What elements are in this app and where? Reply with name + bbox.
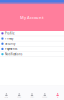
staticText: Me (57, 96, 59, 98)
button[interactable]: Saved (38, 85, 51, 100)
staticText: Saved (42, 96, 47, 98)
staticText: Cart (30, 96, 33, 98)
button[interactable]: Notifications (0, 52, 64, 57)
button[interactable]: Security (0, 41, 64, 47)
button[interactable]: Cart (26, 85, 38, 100)
button[interactable]: Payments (0, 47, 64, 52)
staticText: Privacy (5, 37, 13, 40)
staticText: Payments (5, 47, 17, 51)
button[interactable]: Shop (13, 85, 26, 100)
staticText: My Account (20, 15, 44, 20)
staticText: Notifications (5, 52, 22, 56)
button[interactable]: Privacy (0, 36, 64, 41)
staticText: Home (4, 96, 8, 98)
button[interactable]: Me (51, 85, 64, 100)
staticText: Profile (5, 32, 15, 35)
button[interactable]: Profile (0, 31, 64, 36)
button[interactable]: Home (0, 85, 13, 100)
staticText: Security (5, 42, 15, 45)
staticText: Shop (17, 96, 21, 98)
